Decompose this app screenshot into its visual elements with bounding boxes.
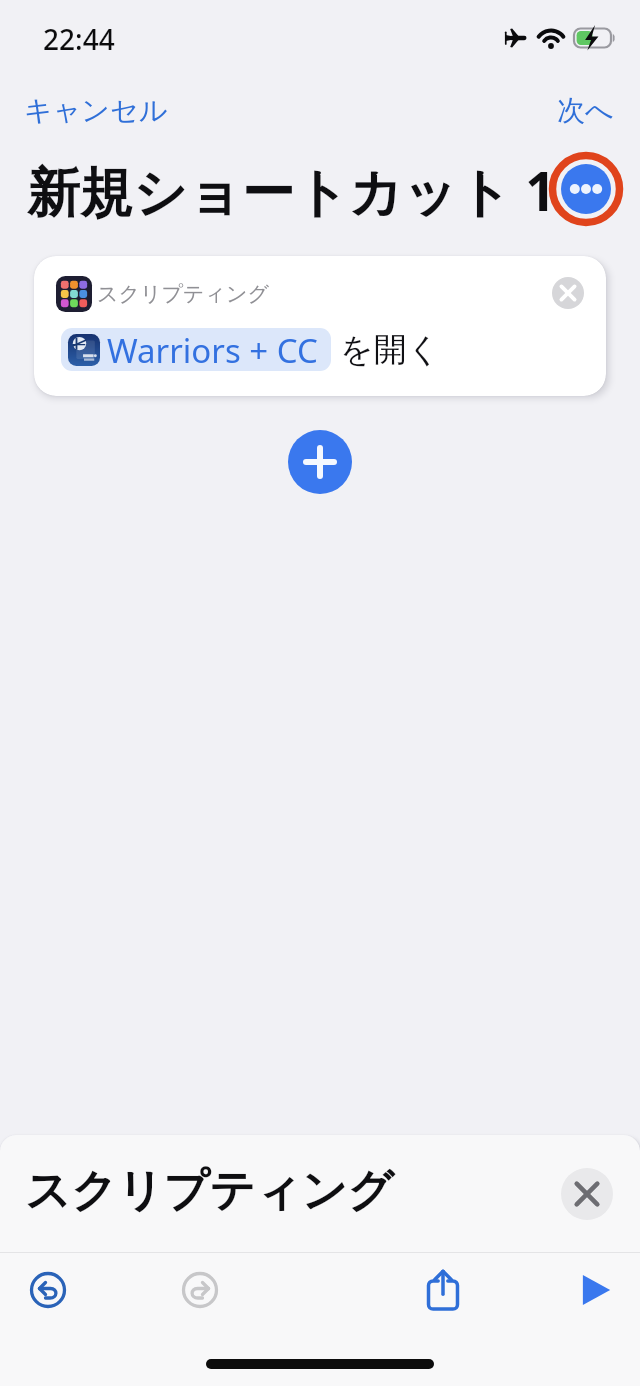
button[interactable]: Redo [174, 1264, 226, 1316]
button[interactable]: キャンセル [8, 85, 184, 136]
button[interactable]: スクリプティング [34, 256, 606, 396]
button[interactable]: More options [546, 149, 626, 229]
staticText: 新規ショートカット 1 [27, 154, 556, 226]
staticText: Warriors + CC [107, 328, 318, 371]
button[interactable]: Warriors + CC [61, 328, 331, 371]
staticText: スクリプティング [25, 1163, 394, 1220]
staticText: 22:44 [43, 20, 115, 58]
staticText: を開く [340, 329, 441, 371]
staticText: スクリプティング [97, 281, 269, 307]
button[interactable]: Close [561, 1168, 613, 1220]
button[interactable]: Run [568, 1264, 620, 1316]
button[interactable]: Remove action [551, 276, 585, 310]
staticText: キャンセル [24, 93, 168, 128]
button[interactable]: Add action [288, 430, 352, 494]
button[interactable]: 次へ [541, 85, 630, 136]
button[interactable]: Undo [22, 1264, 74, 1316]
button[interactable]: Share [417, 1264, 469, 1316]
staticText: 次へ [557, 93, 614, 128]
